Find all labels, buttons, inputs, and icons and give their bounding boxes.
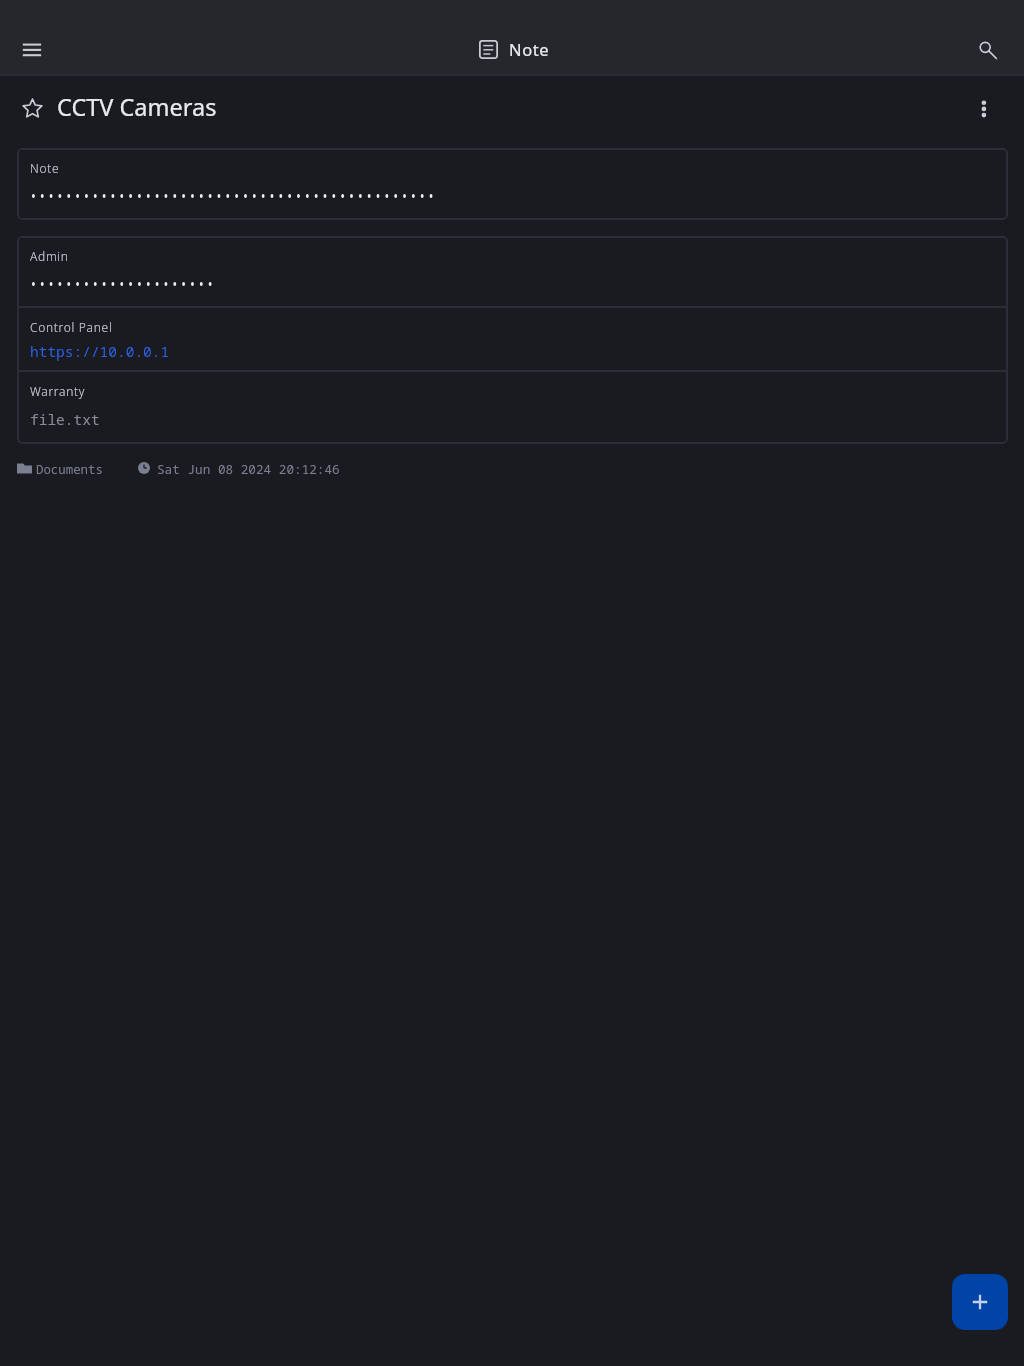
button[interactable]: Note — [17, 148, 1008, 220]
button[interactable]: Note — [478, 38, 550, 60]
button[interactable]: Add note — [952, 1274, 1008, 1330]
staticText: Note — [509, 38, 550, 60]
staticText: CCTV Cameras — [57, 91, 217, 123]
staticText: Admin — [30, 248, 69, 264]
button[interactable]: Favourite — [22, 98, 43, 119]
staticText: Documents — [36, 461, 103, 478]
staticText: Warranty — [30, 383, 86, 399]
button[interactable]: More options — [966, 88, 1006, 128]
button[interactable]: Favourite — [22, 92, 217, 124]
staticText: https://10.0.0.1 — [30, 341, 170, 361]
button[interactable]: Control Panel — [17, 308, 1008, 370]
staticText: Control Panel — [30, 319, 113, 335]
button[interactable]: Menu — [12, 30, 52, 70]
button[interactable]: Admin — [17, 236, 1008, 306]
staticText: Note — [30, 160, 60, 176]
staticText: file.txt — [30, 409, 100, 429]
button[interactable]: Warranty — [17, 372, 1008, 444]
staticText: Sat Jun 08 2024 20:12:46 — [157, 460, 340, 477]
button[interactable]: Search — [968, 30, 1008, 70]
